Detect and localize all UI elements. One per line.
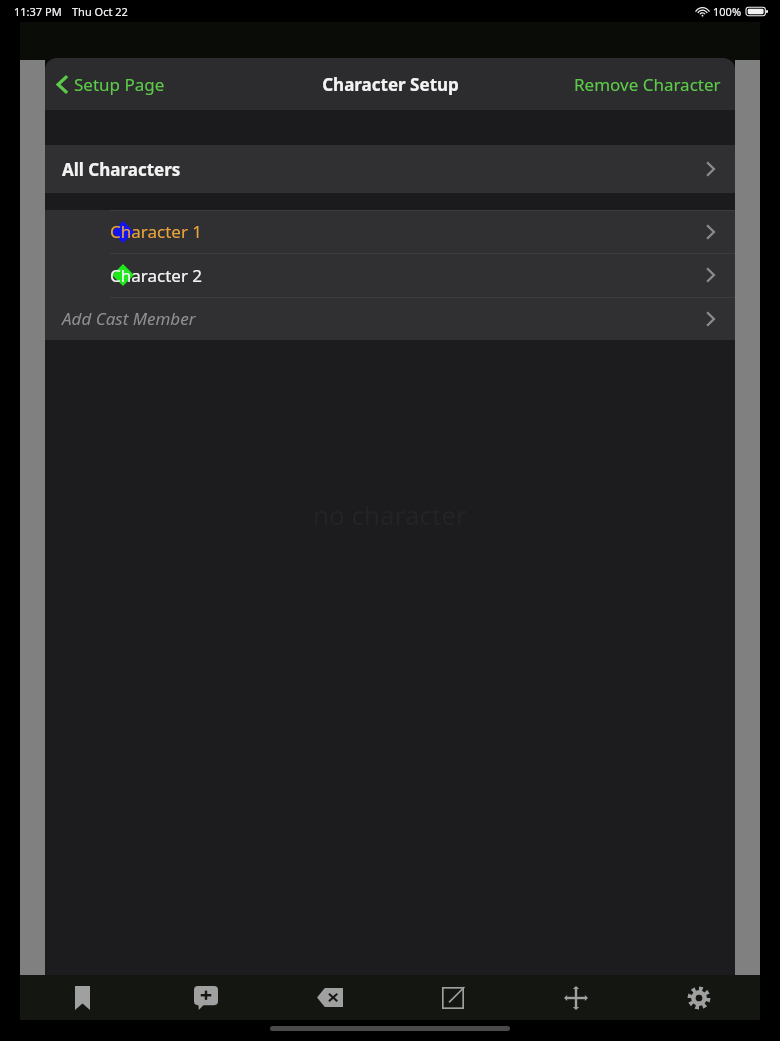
- staticText: Remove Character: [574, 73, 721, 96]
- button[interactable]: All Characters: [45, 145, 735, 193]
- staticText: Character Setup: [322, 73, 459, 96]
- staticText: Thu Oct 22: [72, 4, 128, 19]
- staticText: 11:37 PM: [14, 4, 62, 19]
- button[interactable]: Compose: [391, 975, 514, 1020]
- staticText: All Characters: [62, 158, 181, 181]
- button[interactable]: Character 2: [45, 253, 735, 297]
- button[interactable]: Delete: [268, 975, 391, 1020]
- button[interactable]: Bookmark: [20, 975, 144, 1020]
- staticText: Character 1: [110, 220, 203, 243]
- button[interactable]: Add note: [144, 975, 268, 1020]
- staticText: 100%: [713, 4, 742, 19]
- staticText: Add Cast Member: [62, 307, 196, 330]
- button[interactable]: Setup Page: [45, 65, 177, 104]
- button[interactable]: Remove Character: [562, 65, 735, 104]
- button[interactable]: Add Cast Member: [45, 297, 735, 340]
- button[interactable]: Character 1: [45, 210, 735, 253]
- button[interactable]: Settings: [637, 975, 760, 1020]
- staticText: Character 2: [110, 264, 203, 287]
- staticText: Setup Page: [74, 73, 165, 96]
- button[interactable]: Move: [514, 975, 637, 1020]
